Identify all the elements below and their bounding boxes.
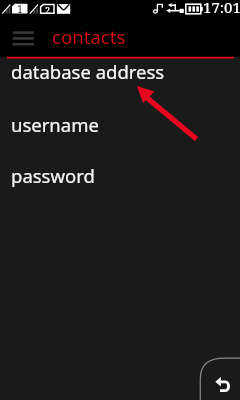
staticText: password [11, 163, 95, 188]
button[interactable]: database address [0, 47, 240, 87]
staticText: 17:01 [203, 0, 240, 13]
staticText: username [11, 112, 99, 137]
button[interactable]: username [0, 100, 240, 140]
staticText: 1 [17, 2, 23, 16]
button[interactable]: Menu [10, 28, 36, 48]
staticText: database address [11, 59, 165, 84]
button[interactable]: password [0, 151, 240, 191]
button[interactable]: Back [196, 352, 240, 400]
staticText: 2 [45, 4, 51, 16]
staticText: contacts [52, 24, 126, 49]
